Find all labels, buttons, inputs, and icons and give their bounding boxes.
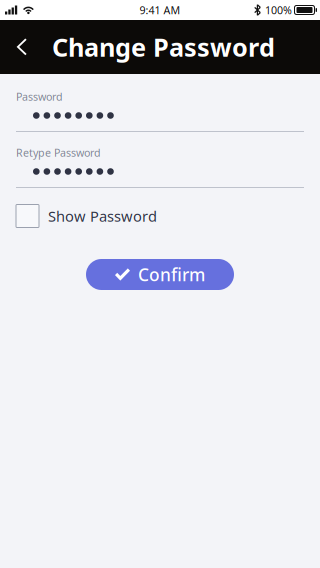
staticText: 9:41 AM bbox=[139, 3, 180, 17]
staticText: Retype Password bbox=[16, 145, 101, 160]
staticText: Show Password bbox=[48, 206, 157, 226]
staticText: Change Password bbox=[52, 30, 275, 64]
button[interactable]: Confirm bbox=[86, 259, 234, 290]
button[interactable]: Back bbox=[16, 20, 52, 74]
staticText: Password bbox=[16, 89, 63, 104]
button[interactable]: Show Password bbox=[16, 204, 304, 228]
staticText: 100% bbox=[265, 3, 292, 17]
staticText: Confirm bbox=[138, 263, 205, 286]
